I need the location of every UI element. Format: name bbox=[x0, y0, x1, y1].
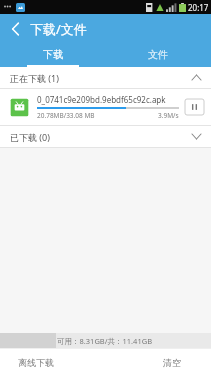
staticText: 正在下载 (1) bbox=[10, 72, 59, 84]
staticText: 下载/文件 bbox=[30, 20, 87, 38]
button[interactable]: 离线下载 bbox=[0, 349, 105, 375]
staticText: 20.78MB/33.08 MB bbox=[37, 111, 95, 120]
staticText: 下载 bbox=[43, 48, 63, 61]
staticText: 离线下载 bbox=[18, 357, 54, 368]
staticText: 文件 bbox=[148, 48, 168, 61]
button[interactable]: 清空 bbox=[105, 349, 211, 375]
staticText: 3.9M/s bbox=[158, 111, 179, 120]
staticText: 20:17 bbox=[188, 2, 209, 13]
staticText: 已下载 (0) bbox=[10, 131, 50, 143]
button[interactable]: 已下载 (0) bbox=[0, 126, 211, 147]
button[interactable]: 0_0741c9e209bd.9ebdf65c92c.apk bbox=[0, 89, 211, 125]
button[interactable]: Pause download bbox=[185, 99, 204, 115]
staticText: 可用：8.31GB/共：11.41GB bbox=[57, 336, 153, 346]
button[interactable]: Back bbox=[0, 14, 30, 43]
button[interactable]: 文件 bbox=[105, 43, 211, 67]
staticText: 0_0741c9e209bd.9ebdf65c92c.apk bbox=[37, 94, 166, 105]
button[interactable]: 正在下载 (1) bbox=[0, 67, 211, 88]
button[interactable]: 下载 bbox=[0, 43, 105, 67]
staticText: 清空 bbox=[163, 357, 181, 368]
